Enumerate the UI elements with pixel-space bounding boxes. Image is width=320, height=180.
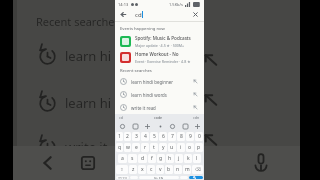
button[interactable]: h <box>166 154 174 163</box>
button[interactable]: Backspace <box>192 165 203 174</box>
button[interactable]: v <box>156 165 164 174</box>
staticText: Major update · 4.5 ★ · 500M+ <box>135 43 185 48</box>
button[interactable]: 1 <box>116 132 123 141</box>
button[interactable]: w <box>124 143 131 152</box>
staticText: g <box>159 155 163 162</box>
button[interactable]: 3 <box>132 132 140 141</box>
staticText: cdn <box>193 115 200 120</box>
button[interactable]: Search <box>189 176 203 179</box>
button[interactable]: b <box>165 165 173 174</box>
button[interactable]: u <box>168 143 176 152</box>
staticText: ?123 <box>118 176 128 179</box>
button[interactable]: f <box>148 154 156 163</box>
button[interactable]: learn hindi beginner <box>120 75 199 88</box>
staticText: r <box>144 144 147 151</box>
staticText: f <box>151 155 153 162</box>
button[interactable]: Insert suggestion <box>199 128 223 152</box>
button[interactable]: 6 <box>159 132 167 141</box>
button[interactable]: learn hi <box>39 92 129 114</box>
staticText: ⇧ <box>120 167 124 172</box>
button[interactable]: q <box>116 143 123 152</box>
staticText: z <box>132 166 135 173</box>
button[interactable]: k <box>184 154 192 163</box>
button[interactable]: x <box>138 165 146 174</box>
button[interactable]: i <box>177 143 185 152</box>
staticText: a <box>121 155 124 162</box>
staticText: code <box>154 115 163 120</box>
staticText: 0 <box>198 133 201 140</box>
staticText: e <box>135 144 138 151</box>
button[interactable]: 5 <box>150 132 158 141</box>
button[interactable]: t <box>150 143 158 152</box>
button[interactable]: d <box>138 154 147 163</box>
button[interactable]: 4 <box>141 132 149 141</box>
button[interactable]: Keyboard tool 0 <box>118 122 126 130</box>
button[interactable]: c <box>147 165 155 174</box>
button[interactable]: Period <box>180 176 188 179</box>
button[interactable]: learn hindi words <box>120 88 199 101</box>
button[interactable]: 2 <box>124 132 131 141</box>
button[interactable]: Keyboard tool 5 <box>181 122 189 130</box>
button[interactable]: Insert suggestion <box>199 48 223 72</box>
button[interactable]: learn hi <box>39 45 129 67</box>
button[interactable]: 8 <box>177 132 185 141</box>
button[interactable]: Insert suggestion <box>192 78 199 85</box>
button[interactable]: Insert suggestion <box>199 88 223 112</box>
button[interactable]: 7 <box>168 132 176 141</box>
button[interactable]: Keyboard tool 3 <box>156 122 164 130</box>
staticText: learn hi <box>65 94 112 112</box>
button[interactable]: g <box>157 154 165 163</box>
staticText: write it <box>65 138 108 156</box>
button[interactable]: write it read <box>120 101 199 114</box>
button[interactable]: Space <box>139 176 179 179</box>
button[interactable]: n <box>174 165 182 174</box>
staticText: Recent searches <box>120 68 152 74</box>
button[interactable]: a <box>118 154 127 163</box>
button[interactable]: write it <box>39 136 129 158</box>
button[interactable]: Keyboard tool 4 <box>168 122 176 130</box>
button[interactable]: p <box>195 143 203 152</box>
button[interactable]: Keyboard tool 6 <box>193 122 201 130</box>
staticText: p <box>197 144 201 151</box>
button[interactable]: Insert suggestion <box>192 104 199 111</box>
button[interactable]: o <box>186 143 194 152</box>
button[interactable]: Comma <box>130 176 138 179</box>
button[interactable]: s <box>128 154 137 163</box>
button[interactable]: 0 <box>195 132 203 141</box>
button[interactable]: Stickers <box>77 152 99 174</box>
staticText: Home Workout - No Equipment <box>135 51 199 57</box>
button[interactable]: Keyboard tool 2 <box>143 122 151 130</box>
button[interactable]: Keyboard tool 1 <box>131 122 139 130</box>
staticText: d <box>141 155 145 162</box>
button[interactable]: Symbols <box>116 176 129 179</box>
staticText: l <box>196 155 198 162</box>
button[interactable]: r <box>141 143 149 152</box>
button[interactable]: Home Workout - No Equipment <box>120 49 199 65</box>
button[interactable]: Spotify: Music & Podcasts <box>120 33 199 49</box>
button[interactable]: z <box>129 165 137 174</box>
staticText: y <box>162 144 165 151</box>
button[interactable]: Clear search <box>191 10 200 19</box>
staticText: w <box>126 144 130 151</box>
staticText: 2 <box>126 133 129 140</box>
button[interactable]: Voice input <box>247 148 275 176</box>
button[interactable]: y <box>159 143 167 152</box>
button[interactable]: Insert suggestion <box>192 91 199 98</box>
button[interactable]: Shift <box>116 165 128 174</box>
button[interactable]: More options <box>115 160 132 163</box>
button[interactable]: j <box>175 154 183 163</box>
button[interactable]: Back <box>119 10 128 19</box>
staticText: Recent searches <box>36 14 120 29</box>
staticText: learn hi <box>65 47 112 65</box>
button[interactable]: Back <box>37 152 59 174</box>
button[interactable]: 9 <box>186 132 194 141</box>
staticText: 1.5Kb/s <box>169 2 183 7</box>
button[interactable]: Back <box>119 8 200 21</box>
staticText: v <box>159 166 162 173</box>
button[interactable]: l <box>193 154 201 163</box>
button[interactable]: m <box>183 165 191 174</box>
button[interactable]: e <box>132 143 140 152</box>
staticText: s <box>131 155 134 162</box>
